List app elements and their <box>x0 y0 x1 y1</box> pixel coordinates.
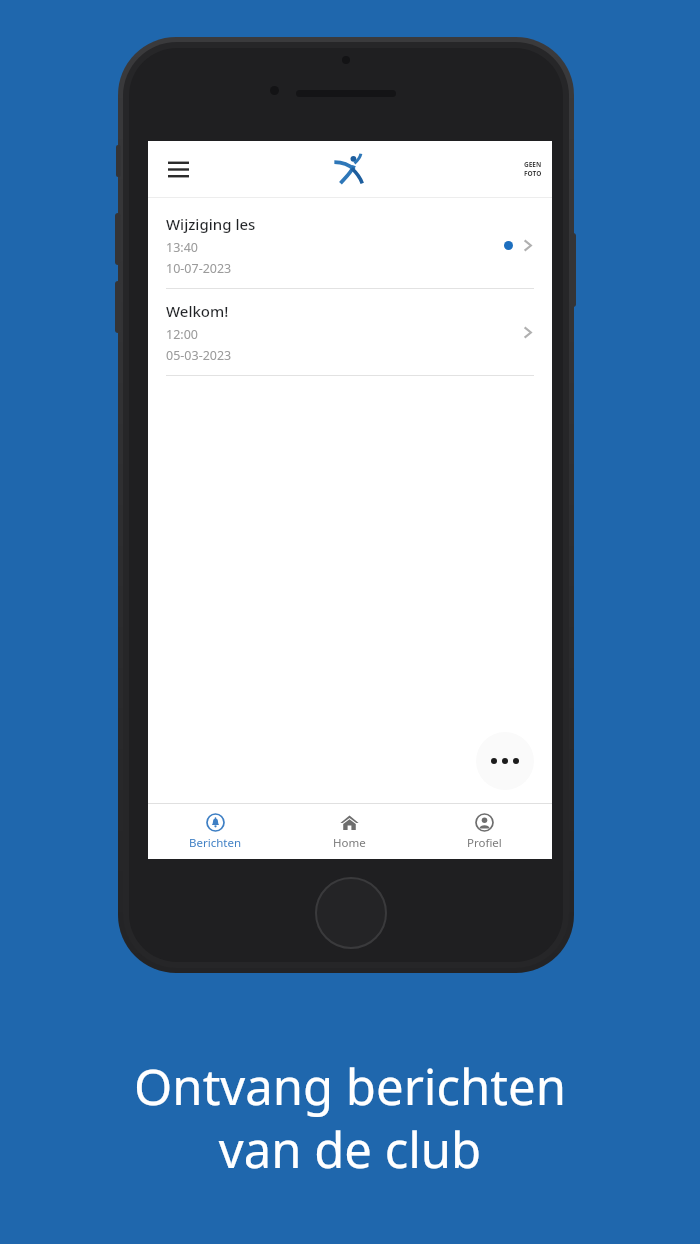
staticText: 13:40 <box>166 239 198 256</box>
button[interactable]: Berichten <box>148 813 282 851</box>
button[interactable]: Menu <box>156 147 200 191</box>
staticText: Home <box>333 835 366 851</box>
staticText: 10-07-2023 <box>166 260 232 277</box>
button[interactable]: Wijziging les <box>148 202 552 289</box>
staticText: 05-03-2023 <box>166 347 232 364</box>
button[interactable]: Profiel <box>417 813 552 851</box>
staticText: Welkom! <box>166 301 229 321</box>
staticText: Berichten <box>189 835 242 851</box>
staticText: GEEN <box>524 160 542 169</box>
button[interactable]: Welkom! <box>148 289 552 376</box>
staticText: Ontvang berichten van de club <box>134 1053 566 1182</box>
button[interactable]: Meer opties <box>476 732 534 790</box>
staticText: Profiel <box>467 835 502 851</box>
staticText: FOTO <box>524 169 542 178</box>
staticText: Wijziging les <box>166 214 256 234</box>
button[interactable]: GEEN <box>524 160 542 178</box>
button[interactable]: Home <box>282 813 417 851</box>
staticText: 12:00 <box>166 326 198 343</box>
